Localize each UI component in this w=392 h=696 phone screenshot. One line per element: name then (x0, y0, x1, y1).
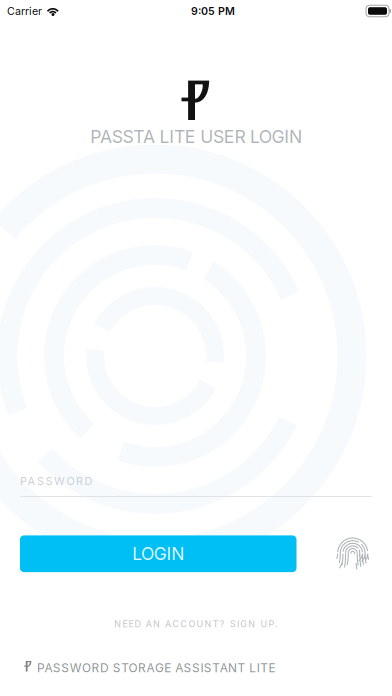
staticText: LOGIN (132, 543, 184, 564)
staticText: PASSWORD (20, 474, 92, 488)
button[interactable]: Sign in with Touch ID (330, 535, 376, 575)
staticText: 9:05 PM (191, 4, 235, 17)
staticText: PASSWORD STORAGE ASSISTANT LITE (37, 661, 276, 675)
staticText: PASSTA LITE USER LOGIN (90, 126, 302, 147)
staticText: NEED AN ACCOUNT? SIGN UP. (114, 619, 278, 629)
button[interactable]: NEED AN ACCOUNT? SIGN UP. (0, 616, 392, 632)
staticText: Carrier (7, 4, 42, 17)
button[interactable]: LOGIN (20, 535, 296, 572)
